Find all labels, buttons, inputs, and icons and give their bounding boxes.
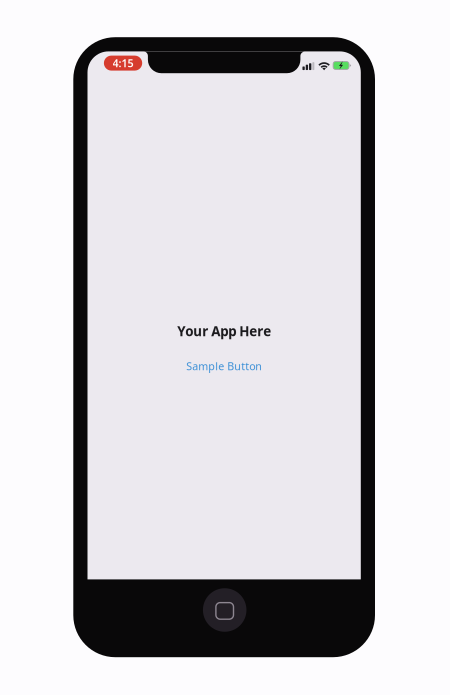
button[interactable]: Sample Button	[178, 354, 270, 378]
staticText: 4:15	[113, 56, 134, 70]
staticText: Sample Button	[186, 359, 262, 373]
button[interactable]: Home	[203, 588, 246, 632]
staticText: Your App Here	[177, 322, 271, 340]
